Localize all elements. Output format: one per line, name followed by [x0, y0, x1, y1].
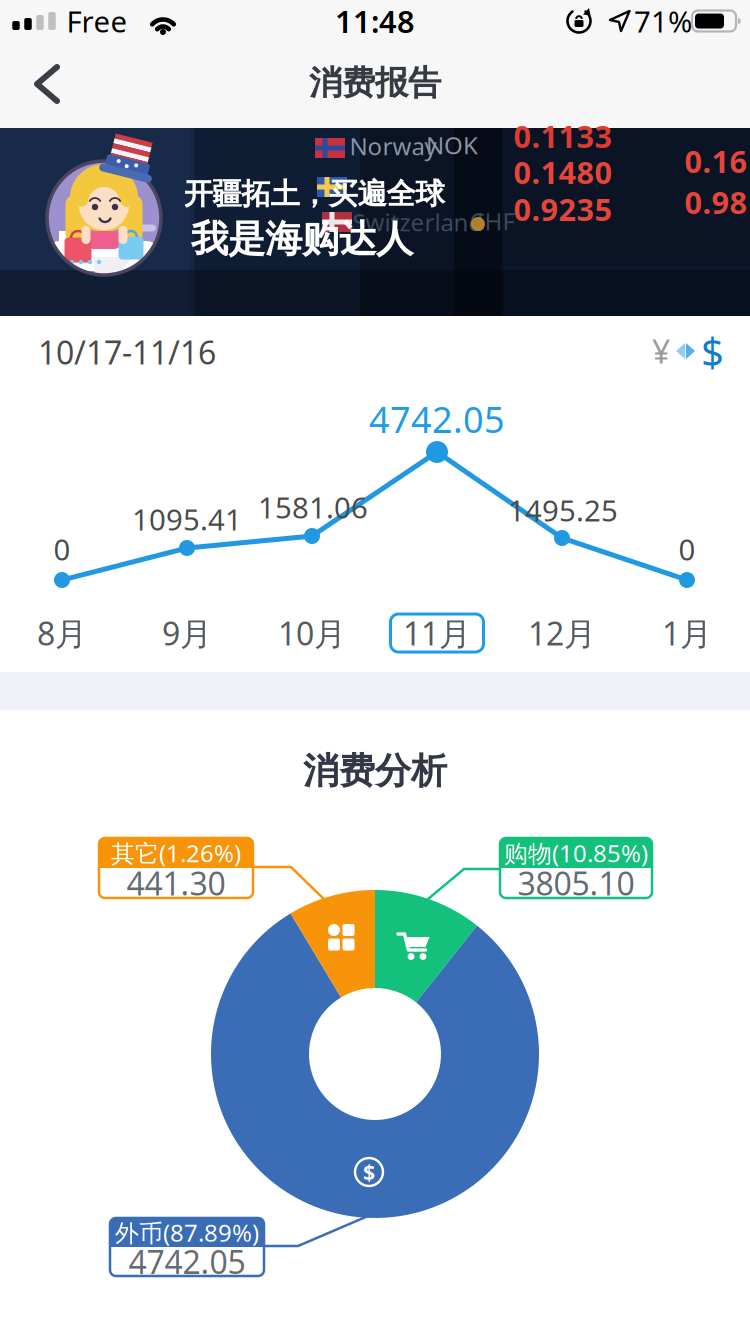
staticText: 0.98: [684, 182, 747, 222]
staticText: 9月: [162, 612, 212, 654]
staticText: 外币(87.89%): [115, 1217, 259, 1248]
staticText: 0.1133: [513, 116, 612, 156]
staticText: 购物(10.85%): [504, 837, 648, 869]
staticText: NOK: [426, 129, 478, 161]
staticText: 我是海购达人: [191, 216, 413, 262]
staticText: 4742.05: [128, 1240, 245, 1283]
staticText: ¥: [652, 330, 670, 372]
staticText: 441.30: [126, 862, 225, 904]
button[interactable]: Back: [32, 63, 64, 105]
staticText: Norway: [349, 130, 436, 162]
staticText: 12月: [528, 612, 596, 654]
staticText: Free: [66, 1, 127, 40]
staticText: $: [363, 1158, 375, 1186]
staticText: 开疆拓土，买遍全球: [183, 176, 444, 212]
staticText: 10/17-11/16: [38, 331, 216, 373]
staticText: 1495.25: [508, 490, 618, 529]
staticText: 4742.05: [369, 395, 505, 443]
staticText: CHF: [469, 205, 514, 237]
staticText: 1月: [662, 612, 712, 654]
staticText: 1095.41: [132, 499, 242, 538]
staticText: 0.16: [684, 141, 747, 181]
button[interactable]: 购物(10.85%): [500, 838, 652, 898]
button[interactable]: 9月: [162, 612, 212, 654]
button[interactable]: Switch currency: [652, 324, 724, 377]
button[interactable]: 10月: [278, 612, 346, 654]
staticText: 0: [53, 529, 70, 568]
staticText: 3805.10: [517, 862, 634, 904]
staticText: 消费报告: [309, 62, 441, 103]
button[interactable]: 8月: [37, 612, 87, 654]
button[interactable]: 其它(1.26%): [99, 838, 253, 898]
button[interactable]: 11月: [390, 614, 483, 652]
staticText: Switzerland: [352, 206, 483, 238]
button[interactable]: 外币(87.89%): [110, 1218, 264, 1276]
staticText: 1581.06: [258, 487, 368, 526]
staticText: 11:48: [335, 1, 415, 41]
staticText: 0.1480: [513, 152, 612, 192]
staticText: $: [701, 324, 724, 377]
staticText: 0.9235: [513, 189, 612, 229]
button[interactable]: 1月: [662, 612, 712, 654]
button[interactable]: 12月: [528, 612, 596, 654]
staticText: 8月: [37, 612, 87, 654]
staticText: 10月: [278, 612, 346, 654]
staticText: 71%: [634, 1, 692, 40]
staticText: 其它(1.26%): [111, 837, 241, 869]
staticText: 11月: [403, 612, 471, 654]
staticText: 消费分析: [303, 749, 447, 793]
staticText: 0: [678, 529, 695, 568]
